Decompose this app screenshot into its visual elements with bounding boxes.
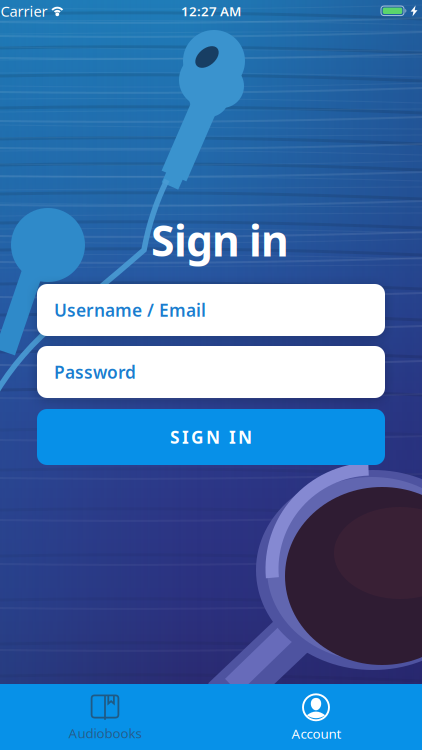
staticText: Password <box>54 360 136 383</box>
button[interactable]: Audiobooks <box>45 682 165 738</box>
staticText: Carrier <box>0 1 47 21</box>
staticText: Username / Email <box>54 298 206 321</box>
button[interactable]: SIGN IN <box>37 409 385 465</box>
button[interactable]: Username / Email <box>37 284 385 336</box>
staticText: Account <box>292 725 342 742</box>
button[interactable]: Password <box>37 346 385 398</box>
staticText: Sign in <box>151 212 289 268</box>
staticText: SIGN IN <box>170 425 252 448</box>
staticText: 12:27 AM <box>181 2 241 20</box>
staticText: Audiobooks <box>68 724 141 742</box>
button[interactable]: Account <box>256 682 376 738</box>
